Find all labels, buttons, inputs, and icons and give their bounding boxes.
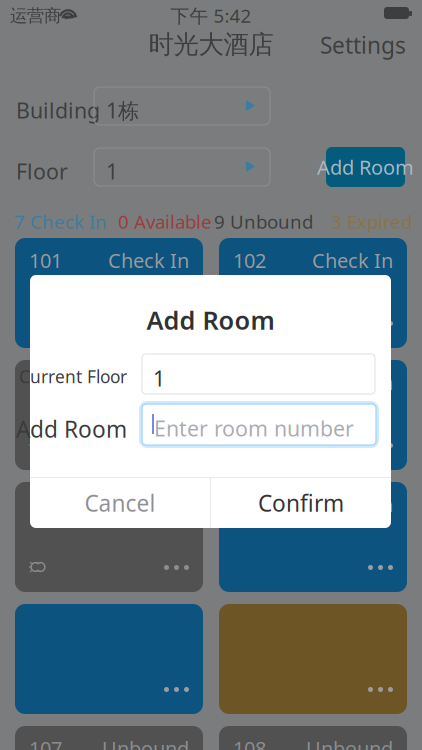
staticText: 时光大酒店 xyxy=(148,29,273,60)
staticText: Check In xyxy=(312,369,393,396)
staticText: 7 Check In xyxy=(14,209,107,234)
staticText: Unbound xyxy=(102,369,189,396)
staticText: 105 xyxy=(29,491,62,518)
button[interactable]: Confirm xyxy=(211,478,391,528)
staticText: Unbound xyxy=(102,491,189,518)
staticText: 103 xyxy=(29,369,62,396)
staticText: 0 Available xyxy=(118,209,212,234)
staticText: 101 xyxy=(29,247,62,274)
staticText: Enter room number xyxy=(154,414,354,442)
staticText: Settings xyxy=(320,30,406,60)
staticText: 9 Unbound xyxy=(214,209,313,234)
staticText: 1 xyxy=(106,157,118,185)
staticText: Confirm xyxy=(258,488,344,518)
staticText: 1栋 xyxy=(106,96,139,124)
staticText: Add Room xyxy=(146,303,274,337)
button[interactable]: 102 xyxy=(219,238,407,348)
staticText: 下午 5:42 xyxy=(170,3,251,28)
staticText: 104 xyxy=(233,369,266,396)
staticText: Unbound xyxy=(306,735,393,750)
staticText: 运营商 xyxy=(10,5,61,26)
staticText: Check In xyxy=(312,491,393,518)
staticText: 1 xyxy=(153,364,165,392)
button[interactable]: Settings xyxy=(0,0,422,750)
button[interactable]: 107 xyxy=(15,726,203,750)
staticText: 106 xyxy=(233,491,266,518)
staticText: Check In xyxy=(108,247,189,274)
button[interactable]: 1栋 xyxy=(94,87,270,125)
staticText: Add Room xyxy=(317,154,414,180)
button[interactable]: 103 xyxy=(15,360,203,470)
staticText: Check In xyxy=(312,247,393,274)
button[interactable] xyxy=(15,604,203,714)
staticText: 108 xyxy=(233,735,266,750)
staticText: Cancel xyxy=(84,488,155,518)
button[interactable]: 101 xyxy=(15,238,203,348)
staticText: 3 Expired xyxy=(331,209,412,234)
staticText: Floor xyxy=(16,157,68,185)
button[interactable]: Add Room xyxy=(326,147,405,187)
button[interactable]: 105 xyxy=(15,482,203,592)
button[interactable] xyxy=(219,604,407,714)
button[interactable]: 106 xyxy=(219,482,407,592)
staticText: Building xyxy=(16,96,100,124)
staticText: Add Room xyxy=(16,414,127,444)
staticText: Current Floor xyxy=(19,365,127,388)
button[interactable]: Cancel xyxy=(30,478,210,528)
staticText: Unbound xyxy=(102,735,189,750)
button[interactable]: 1 xyxy=(94,148,270,186)
button[interactable]: 108 xyxy=(219,726,407,750)
staticText: 102 xyxy=(233,247,266,274)
button[interactable]: 104 xyxy=(219,360,407,470)
staticText: 107 xyxy=(29,735,62,750)
